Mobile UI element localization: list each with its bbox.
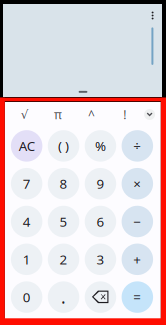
button[interactable]: 0 <box>11 281 42 313</box>
staticText: ! <box>123 106 126 122</box>
staticText: 2 <box>59 250 67 268</box>
button[interactable]: ^ <box>75 102 108 127</box>
button[interactable]: 6 <box>85 206 116 237</box>
button[interactable]: . <box>48 281 79 313</box>
staticText: 5 <box>59 213 67 230</box>
button[interactable]: 7 <box>11 168 42 199</box>
staticText: ÷ <box>133 137 141 155</box>
staticText: 3 <box>96 250 104 268</box>
staticText: = <box>133 288 141 306</box>
staticText: − <box>133 213 141 230</box>
button[interactable]: AC <box>11 130 42 162</box>
staticText: 4 <box>23 213 31 230</box>
staticText: AC <box>19 137 35 155</box>
staticText: 8 <box>59 175 67 192</box>
staticText: 7 <box>23 175 31 192</box>
button[interactable]: 2 <box>48 243 79 275</box>
button[interactable]: = <box>122 281 153 313</box>
button[interactable]: − <box>122 206 153 237</box>
staticText: × <box>133 175 141 192</box>
button[interactable]: ! <box>108 102 141 127</box>
staticText: √ <box>21 108 29 121</box>
button[interactable]: 4 <box>11 206 42 237</box>
button[interactable]: Delete <box>85 281 116 313</box>
button[interactable]: More functions <box>144 109 155 120</box>
button[interactable]: + <box>122 243 153 275</box>
staticText: 6 <box>96 213 104 230</box>
staticText: ^ <box>88 106 95 122</box>
button[interactable]: × <box>122 168 153 199</box>
button[interactable]: 8 <box>48 168 79 199</box>
staticText: 0 <box>23 288 31 306</box>
staticText: 1 <box>23 250 31 268</box>
button[interactable]: ( ) <box>48 130 79 162</box>
staticText: % <box>95 137 106 155</box>
staticText: 9 <box>96 175 104 192</box>
staticText: π <box>54 106 62 122</box>
button[interactable]: 9 <box>85 168 116 199</box>
staticText: ( ) <box>58 137 69 155</box>
button[interactable]: 1 <box>11 243 42 275</box>
button[interactable]: More options <box>146 7 160 23</box>
staticText: . <box>61 286 66 309</box>
button[interactable]: ÷ <box>122 130 153 162</box>
button[interactable]: 5 <box>48 206 79 237</box>
button[interactable]: 3 <box>85 243 116 275</box>
button[interactable]: π <box>41 102 75 127</box>
button[interactable]: % <box>85 130 116 162</box>
button[interactable]: √ <box>8 102 41 127</box>
staticText: + <box>133 250 141 268</box>
